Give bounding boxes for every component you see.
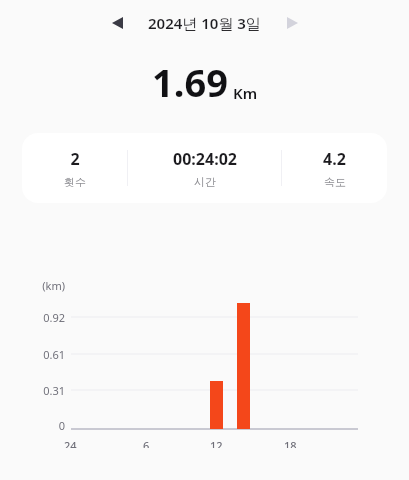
staticText: 2	[70, 148, 80, 170]
staticText: 2024년 10월 3일	[148, 13, 261, 33]
staticText: (km)	[0, 278, 65, 293]
staticText: 0.31	[0, 383, 65, 398]
staticText: 18	[284, 438, 297, 448]
staticText: 횟수	[64, 175, 86, 189]
staticText: 1.69	[152, 56, 228, 108]
staticText: 24	[64, 438, 77, 448]
button[interactable]: Previous day	[100, 6, 134, 40]
staticText: 12	[210, 438, 223, 448]
staticText: Km	[233, 83, 258, 103]
staticText: 0	[0, 418, 65, 433]
button[interactable]: 2	[22, 133, 127, 203]
button[interactable]: 00:24:02	[128, 133, 281, 203]
staticText: 시간	[194, 175, 216, 189]
staticText: 0.61	[0, 347, 65, 362]
staticText: 4.2	[323, 148, 346, 170]
staticText: 6	[143, 438, 150, 448]
button[interactable]: 4.2	[282, 133, 387, 203]
staticText: 속도	[324, 175, 346, 189]
staticText: 0.92	[0, 310, 65, 325]
staticText: 00:24:02	[173, 148, 237, 170]
button[interactable]: Next day	[275, 6, 309, 40]
